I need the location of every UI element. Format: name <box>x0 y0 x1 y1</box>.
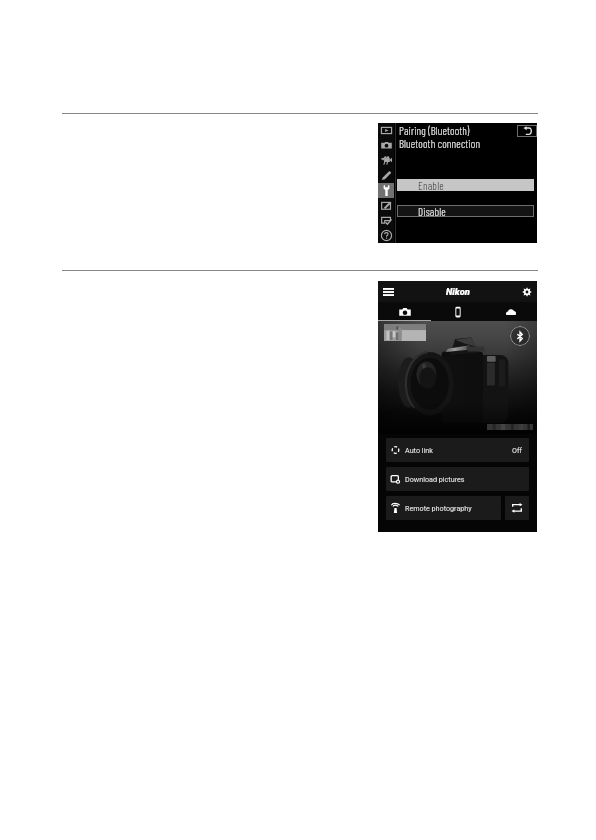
button[interactable]: Back <box>517 125 537 137</box>
button[interactable]: Enable <box>397 179 534 191</box>
staticText: Bluetooth connection <box>399 137 481 150</box>
button[interactable]: Menu <box>378 281 399 302</box>
staticText: Enable <box>418 179 444 191</box>
staticText: Remote photography <box>405 504 472 512</box>
button[interactable]: Custom settings <box>378 168 394 183</box>
staticText: Download pictures <box>405 475 465 483</box>
button[interactable]: Switch connection <box>505 496 529 520</box>
button[interactable]: Photo shooting menu <box>378 138 394 153</box>
button[interactable]: Disable <box>397 205 534 217</box>
staticText: Nikon <box>446 286 470 297</box>
staticText: Off <box>512 446 522 454</box>
button[interactable]: Bluetooth <box>510 326 530 346</box>
button[interactable]: Camera tab <box>378 302 431 321</box>
button[interactable]: Help <box>378 228 394 243</box>
staticText: Disable <box>418 205 446 217</box>
button[interactable]: Setup menu <box>378 183 394 198</box>
button[interactable]: Movie shooting menu <box>378 153 394 168</box>
button[interactable]: Retouch menu <box>378 198 394 213</box>
button[interactable]: Download pictures <box>386 467 529 491</box>
button[interactable]: Playback menu <box>378 123 394 138</box>
staticText: Auto link <box>405 446 433 454</box>
button[interactable]: Phone tab <box>431 302 484 321</box>
button[interactable]: My menu <box>378 213 394 228</box>
staticText: Pairing (Bluetooth) <box>399 124 470 137</box>
button[interactable]: Remote photography <box>386 496 501 520</box>
button[interactable]: Settings <box>516 281 537 302</box>
button[interactable]: Auto link <box>386 438 529 462</box>
button[interactable]: Cloud tab <box>484 302 537 321</box>
